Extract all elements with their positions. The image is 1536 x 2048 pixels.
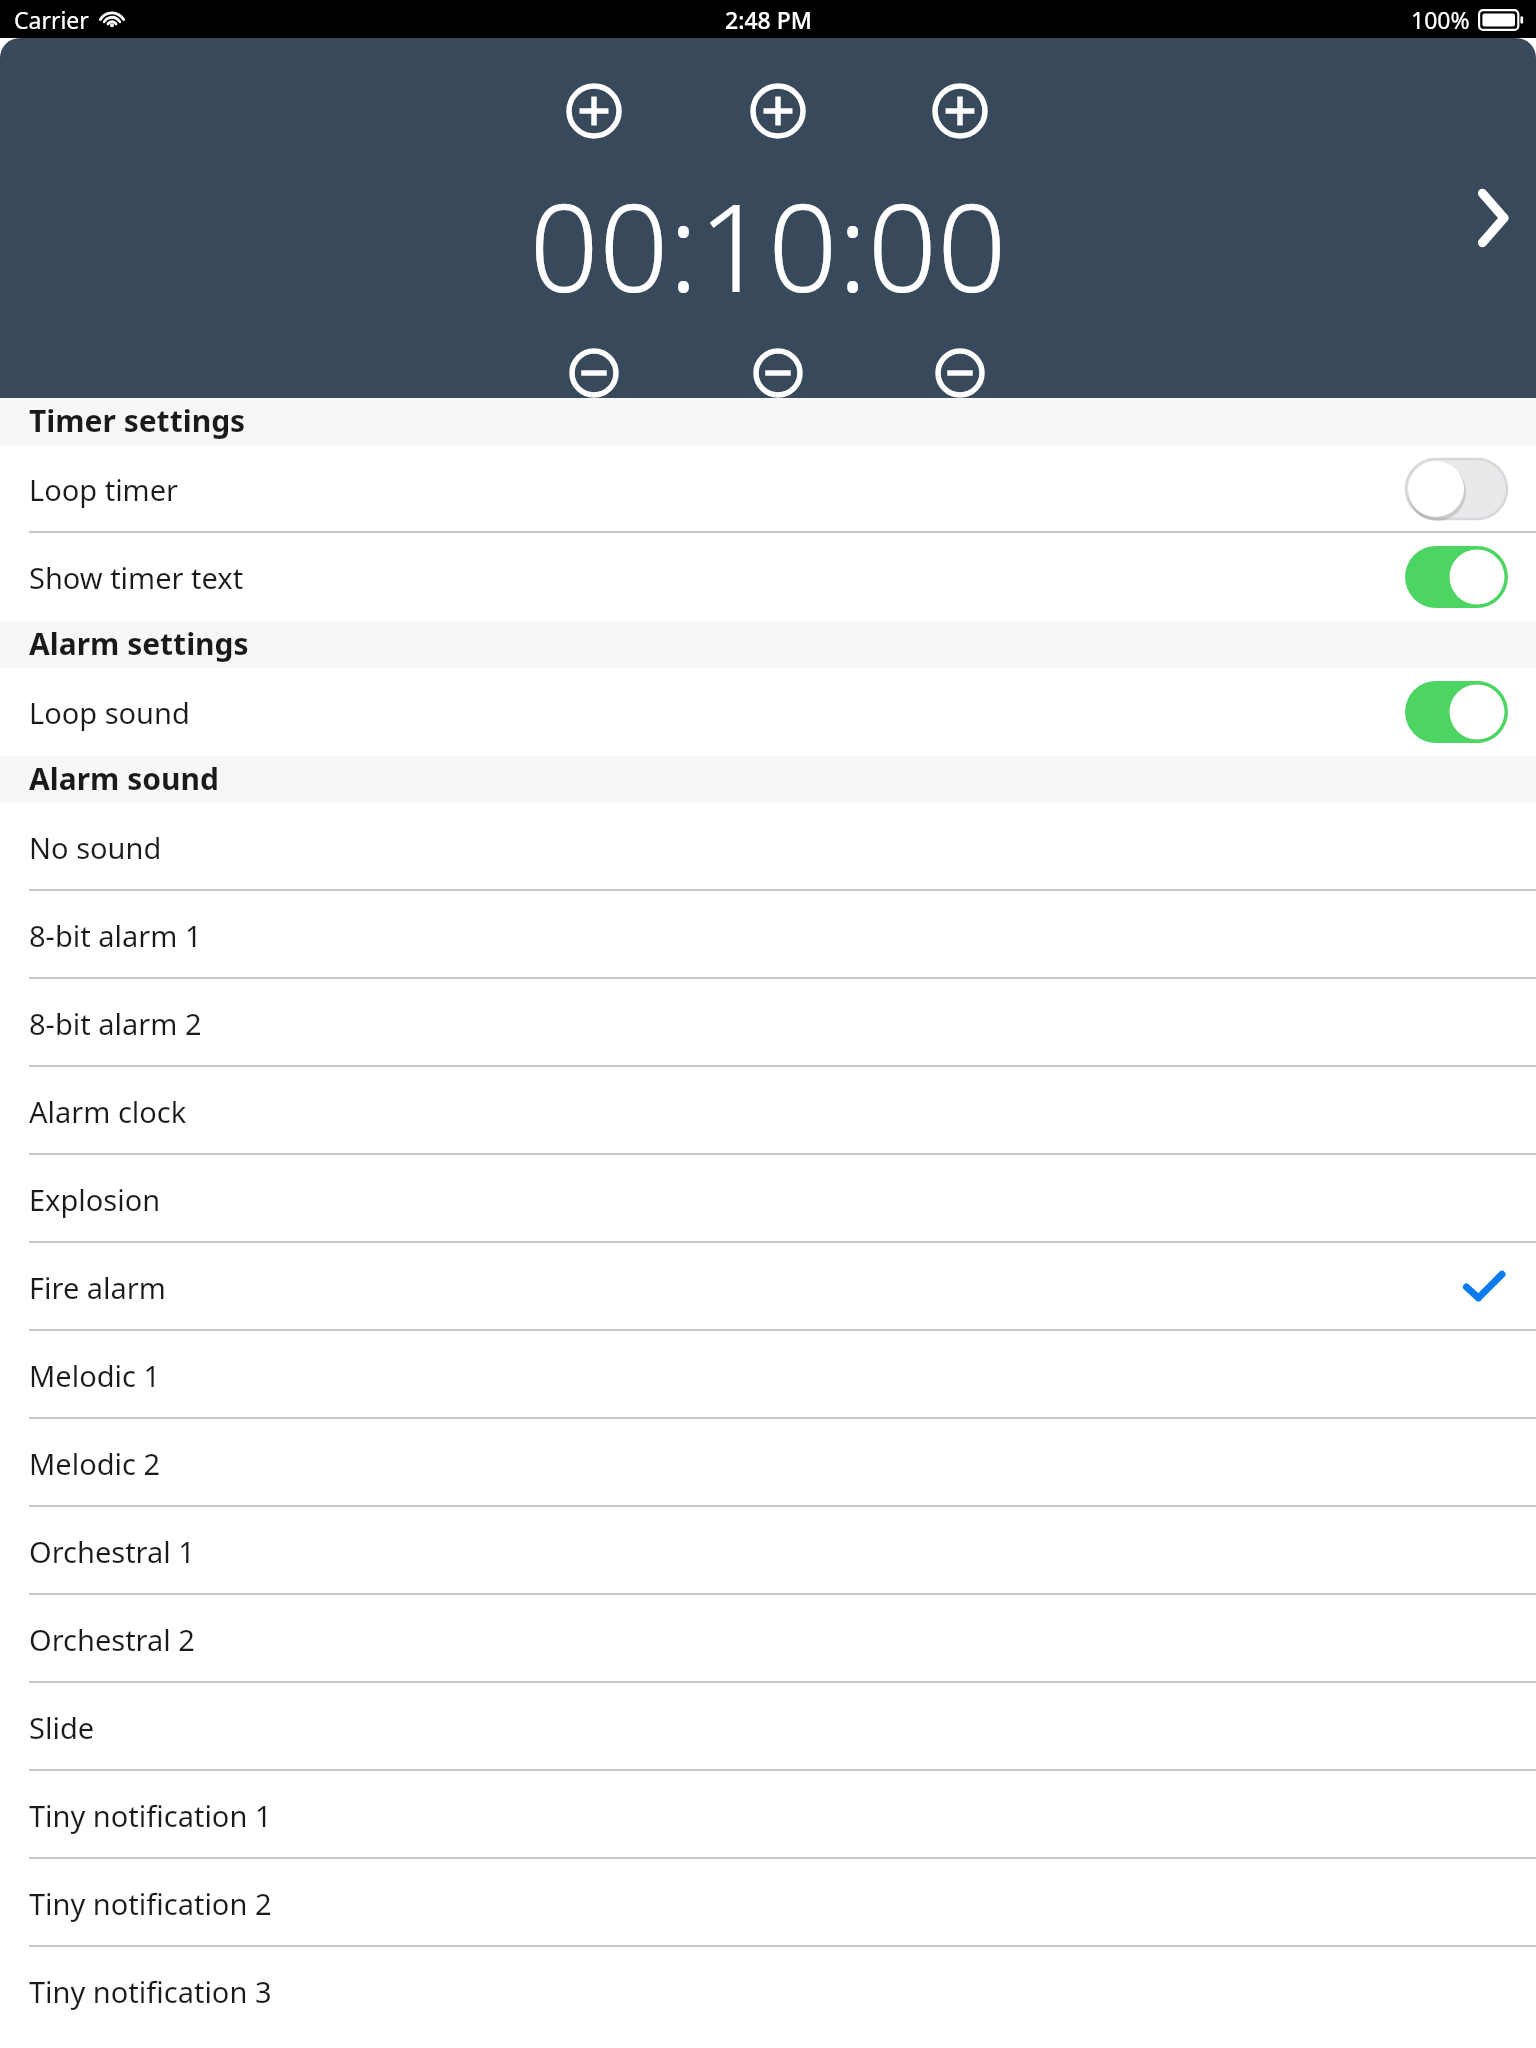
button[interactable]: Tiny notification 3 (0, 1947, 1536, 2035)
button[interactable]: Show timer text (0, 533, 1536, 621)
staticText: Melodic 2 (29, 1444, 161, 1483)
button[interactable]: Increase minutes (749, 82, 807, 140)
staticText: No sound (29, 828, 162, 867)
button[interactable]: Slide (0, 1683, 1536, 1771)
staticText: Tiny notification 2 (29, 1884, 272, 1923)
button[interactable]: Fire alarm (0, 1243, 1536, 1331)
staticText: Tiny notification 1 (29, 1796, 272, 1835)
staticText: Loop timer (29, 470, 179, 509)
staticText: 2:48 PM (725, 4, 812, 35)
button[interactable]: Loop timer (0, 445, 1536, 533)
staticText: Explosion (29, 1180, 161, 1219)
staticText: Orchestral 2 (29, 1620, 195, 1659)
staticText: Carrier (14, 4, 89, 35)
button[interactable]: Decrease hours (565, 348, 623, 398)
staticText: Fire alarm (29, 1268, 166, 1307)
staticText: Melodic 1 (29, 1356, 161, 1395)
button[interactable]: Explosion (0, 1155, 1536, 1243)
button[interactable]: Loop sound (0, 668, 1536, 756)
staticText: Show timer text (29, 558, 244, 597)
staticText: 8-bit alarm 1 (29, 916, 202, 955)
button[interactable]: 8-bit alarm 1 (0, 891, 1536, 979)
button[interactable]: Next (1452, 178, 1532, 258)
staticText: Timer settings (29, 400, 246, 441)
staticText: 8-bit alarm 2 (29, 1004, 202, 1043)
button[interactable]: Increase seconds (931, 82, 989, 140)
staticText: Tiny notification 3 (29, 1972, 272, 2011)
button[interactable]: Decrease minutes (749, 348, 807, 398)
button[interactable]: Tiny notification 1 (0, 1771, 1536, 1859)
staticText: Alarm sound (29, 758, 219, 799)
button[interactable]: Alarm clock (0, 1067, 1536, 1155)
staticText: Loop sound (29, 693, 190, 732)
button[interactable]: Increase hours (565, 82, 623, 140)
staticText: Alarm settings (29, 623, 249, 664)
button[interactable]: Orchestral 1 (0, 1507, 1536, 1595)
button[interactable]: Orchestral 2 (0, 1595, 1536, 1683)
button[interactable]: Tiny notification 2 (0, 1859, 1536, 1947)
staticText: Alarm clock (29, 1092, 187, 1131)
staticText: 100% (1411, 4, 1470, 35)
staticText: 00:10:00 (0, 162, 1536, 328)
button[interactable]: Decrease seconds (931, 348, 989, 398)
button[interactable]: 8-bit alarm 2 (0, 979, 1536, 1067)
staticText: Orchestral 1 (29, 1532, 195, 1571)
button[interactable]: No sound (0, 803, 1536, 891)
button[interactable]: On (1405, 546, 1508, 608)
button[interactable]: Melodic 2 (0, 1419, 1536, 1507)
button[interactable]: Melodic 1 (0, 1331, 1536, 1419)
staticText: Slide (29, 1708, 95, 1747)
button[interactable]: On (1405, 681, 1508, 743)
button[interactable]: Off (1405, 458, 1508, 520)
